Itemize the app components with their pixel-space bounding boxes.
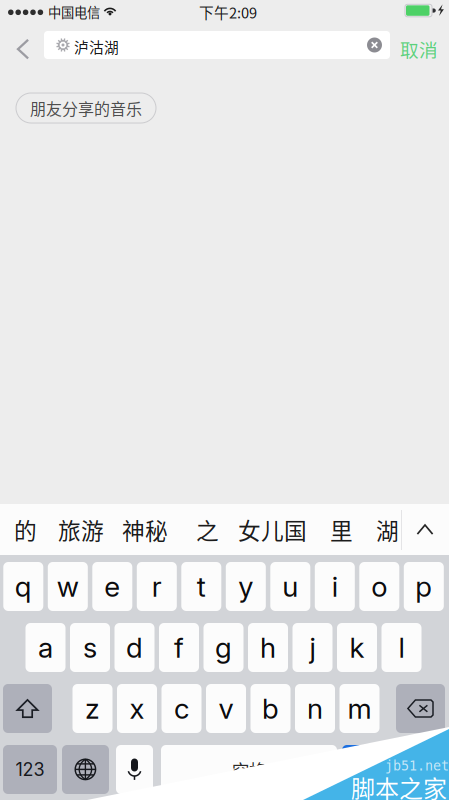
staticText: 湖 — [376, 513, 399, 546]
button[interactable]: 之 — [187, 508, 228, 551]
button[interactable]: z — [72, 684, 112, 733]
button[interactable]: v — [206, 684, 246, 733]
button[interactable]: Shift — [3, 684, 52, 733]
button[interactable]: Expand candidates — [408, 504, 442, 555]
button[interactable]: q — [3, 562, 43, 611]
staticText: 搜索 — [376, 757, 410, 782]
staticText: 里 — [330, 513, 353, 546]
staticText: t — [197, 570, 206, 603]
staticText: z — [85, 692, 100, 725]
button[interactable]: 湖 — [367, 508, 408, 551]
button[interactable]: p — [404, 562, 444, 611]
button[interactable]: m — [339, 684, 379, 733]
staticText: k — [349, 631, 364, 664]
button[interactable]: d — [114, 623, 154, 672]
button[interactable]: k — [337, 623, 377, 672]
button[interactable]: Next keyboard — [62, 745, 109, 794]
button[interactable]: r — [137, 562, 177, 611]
staticText: r — [152, 570, 162, 603]
staticText: 女儿国 — [238, 513, 307, 546]
staticText: l — [398, 631, 404, 664]
button[interactable]: c — [161, 684, 201, 733]
staticText: 的 — [14, 513, 37, 546]
staticText: p — [415, 570, 432, 603]
button[interactable]: 女儿国 — [229, 508, 316, 551]
staticText: 旅游 — [58, 513, 104, 546]
staticText: q — [15, 570, 32, 603]
button[interactable]: Clear search text — [367, 37, 382, 52]
staticText: 空格 — [232, 757, 266, 782]
button[interactable]: Dictation — [116, 745, 153, 794]
button[interactable]: 旅游 — [49, 508, 113, 551]
button[interactable]: e — [92, 562, 132, 611]
button[interactable]: x — [117, 684, 157, 733]
button[interactable]: w — [48, 562, 88, 611]
staticText: y — [238, 570, 253, 603]
staticText: i — [332, 570, 338, 603]
staticText: 下午2:09 — [199, 1, 257, 23]
staticText: n — [307, 692, 323, 725]
button[interactable]: s — [70, 623, 110, 672]
button[interactable]: g — [203, 623, 243, 672]
button[interactable]: Delete — [396, 684, 445, 733]
button[interactable]: 的 — [5, 508, 46, 551]
staticText: e — [104, 570, 120, 603]
staticText: 神秘 — [122, 513, 168, 546]
staticText: h — [260, 631, 276, 664]
button[interactable]: 朋友分享的音乐 — [16, 93, 156, 123]
staticText: g — [215, 631, 232, 664]
button[interactable]: i — [315, 562, 355, 611]
staticText: x — [129, 692, 144, 725]
button[interactable]: y — [226, 562, 266, 611]
button[interactable]: u — [270, 562, 310, 611]
button[interactable]: a — [25, 623, 65, 672]
staticText: s — [83, 631, 97, 664]
button[interactable]: Back — [6, 28, 40, 70]
button[interactable]: t — [181, 562, 221, 611]
staticText: 中国电信 — [48, 2, 100, 21]
button[interactable]: l — [381, 623, 421, 672]
staticText: v — [218, 692, 233, 725]
staticText: j — [309, 631, 315, 664]
button[interactable]: o — [359, 562, 399, 611]
staticText: b — [262, 692, 279, 725]
staticText: 脚本之家 — [351, 770, 447, 800]
staticText: a — [38, 631, 53, 664]
button[interactable]: 123 — [3, 745, 57, 794]
button[interactable]: n — [295, 684, 335, 733]
staticText: 取消 — [400, 35, 438, 62]
staticText: f — [174, 631, 184, 664]
button[interactable]: j — [292, 623, 332, 672]
button[interactable]: b — [250, 684, 290, 733]
staticText: c — [174, 692, 189, 725]
staticText: w — [57, 570, 79, 603]
button[interactable]: 空格 — [161, 745, 337, 794]
button[interactable]: f — [159, 623, 199, 672]
staticText: 123 — [15, 759, 44, 780]
button[interactable]: 里 — [321, 508, 362, 551]
button[interactable]: 取消 — [398, 28, 440, 70]
button[interactable]: 神秘 — [113, 508, 177, 551]
staticText: jb51.net — [385, 758, 449, 773]
staticText: d — [126, 631, 143, 664]
staticText: u — [282, 570, 298, 603]
button[interactable]: h — [248, 623, 288, 672]
staticText: m — [347, 692, 371, 725]
staticText: 朋友分享的音乐 — [30, 96, 142, 120]
button[interactable]: 搜索 — [342, 745, 445, 794]
staticText: 之 — [196, 513, 219, 546]
staticText: o — [371, 570, 387, 603]
staticText: 泸沽湖 — [74, 36, 119, 57]
